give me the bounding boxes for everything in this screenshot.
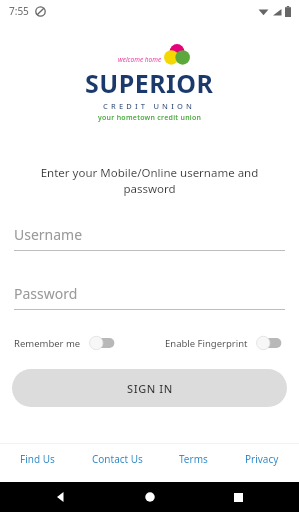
button[interactable]: Privacy [241, 448, 283, 470]
staticText: CREDIT UNION [103, 101, 196, 111]
button[interactable]: Username [14, 225, 285, 251]
staticText: Contact Us [92, 452, 143, 466]
staticText: Terms [179, 452, 208, 466]
staticText: your hometown credit union [98, 113, 202, 123]
button[interactable]: Recent apps [223, 482, 253, 512]
staticText: Remember me [14, 337, 81, 350]
staticText: SIGN IN [127, 381, 173, 396]
staticText: Privacy [245, 452, 279, 466]
staticText: Password [14, 284, 78, 303]
staticText: Find Us [20, 452, 55, 466]
button[interactable]: SIGN IN [12, 369, 287, 407]
button[interactable]: Contact Us [88, 448, 147, 470]
button[interactable]: Back [46, 482, 76, 512]
staticText: SUPERIOR [85, 66, 214, 100]
staticText: Enter your Mobile/Online username and pa… [16, 165, 283, 197]
staticText: Enable Fingerprint [165, 337, 248, 350]
staticText: Username [14, 225, 83, 244]
button[interactable]: Home [135, 482, 165, 512]
button[interactable]: Find Us [16, 448, 59, 470]
button[interactable]: Terms [175, 448, 212, 470]
button[interactable]: Remember me [14, 335, 116, 351]
staticText: 7:55 [9, 4, 29, 18]
staticText: welcome home [118, 55, 162, 64]
button[interactable]: Enable Fingerprint [165, 335, 283, 351]
button[interactable]: Password [14, 284, 285, 310]
